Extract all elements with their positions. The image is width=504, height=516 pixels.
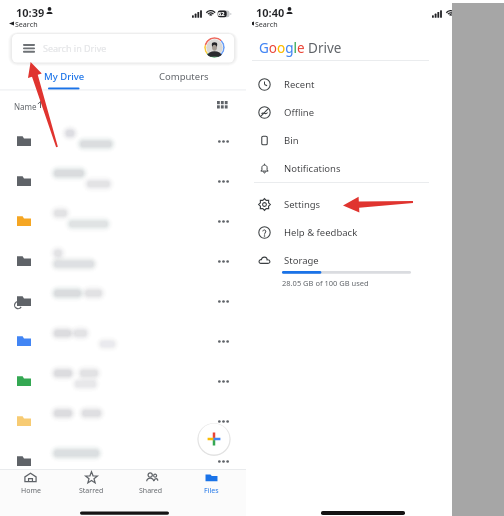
staticText: 28.05 GB of 100 GB used [282, 278, 369, 288]
staticText: Help & feedback [284, 226, 358, 239]
button[interactable]: Recent [252, 70, 429, 98]
staticText: 10:39 [16, 5, 45, 20]
button[interactable] [12, 34, 234, 63]
button[interactable]: My Drive [30, 65, 98, 92]
staticText: Name [14, 101, 37, 112]
button[interactable]: More options [0, 121, 246, 161]
staticText: Computers [159, 70, 209, 83]
button[interactable]: More options [0, 161, 246, 201]
button[interactable]: More options [0, 441, 246, 481]
button[interactable]: More options [208, 201, 238, 241]
button[interactable]: Notifications [252, 154, 429, 182]
staticText: 10:40 [256, 5, 285, 20]
button[interactable]: More options [208, 121, 238, 161]
staticText: Notifications [284, 162, 341, 175]
button[interactable]: More options [0, 281, 246, 321]
staticText: Settings [284, 198, 321, 211]
button[interactable]: More options [0, 201, 246, 241]
staticText: Search in Drive [43, 42, 107, 54]
button[interactable]: Account [204, 37, 225, 58]
staticText: Bin [284, 134, 299, 147]
button[interactable]: Settings [252, 190, 429, 218]
staticText: Home [21, 486, 41, 496]
button[interactable]: More options [0, 321, 246, 361]
staticText: Shared [139, 486, 163, 496]
button[interactable]: Switch to grid view [213, 96, 231, 114]
button[interactable]: Home [0, 469, 61, 504]
button[interactable]: More options [208, 241, 238, 281]
staticText: Starred [79, 486, 104, 496]
staticText: Google Drive [259, 39, 342, 57]
button[interactable]: More options [208, 441, 238, 481]
button[interactable]: Shared [121, 469, 181, 504]
button[interactable]: More options [0, 361, 246, 401]
button[interactable]: Open navigation drawer [20, 40, 37, 57]
button[interactable]: More options [208, 281, 238, 321]
staticText: Files [204, 486, 219, 496]
button[interactable]: More options [208, 161, 238, 201]
button[interactable]: More options [0, 401, 246, 441]
staticText: Recent [284, 78, 315, 91]
staticText: Offline [284, 106, 315, 119]
staticText: My Drive [44, 70, 85, 83]
button[interactable]: Help & feedback [252, 218, 429, 246]
button[interactable]: More options [208, 401, 238, 441]
button[interactable]: Storage [252, 246, 429, 274]
button[interactable]: More options [208, 361, 238, 401]
staticText: Search [15, 20, 38, 30]
button[interactable]: Offline [252, 98, 429, 126]
button[interactable]: Bin [252, 126, 429, 154]
button[interactable]: Starred [61, 469, 121, 504]
button[interactable]: More options [0, 241, 246, 281]
staticText: Storage [284, 254, 319, 267]
button[interactable]: Create new [197, 422, 231, 456]
staticText: 62 [218, 10, 225, 17]
staticText: Search [255, 20, 278, 30]
button[interactable]: More options [208, 321, 238, 361]
button[interactable]: Files [181, 469, 241, 504]
button[interactable]: Computers [150, 65, 218, 92]
